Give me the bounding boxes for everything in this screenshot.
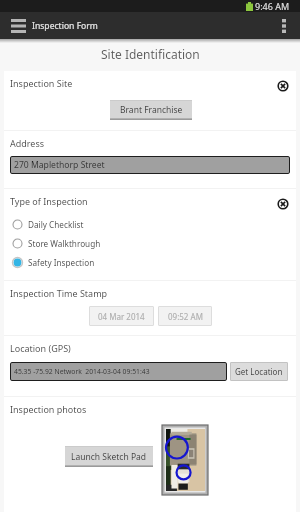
button[interactable]: 04 Mar 2014 (89, 306, 154, 326)
staticText: Get Location (235, 366, 283, 377)
staticText: 270 Maplethorp Street (14, 159, 105, 171)
staticText: Daily Checklist (28, 219, 84, 230)
button[interactable]: 09:52 AM (158, 306, 212, 326)
staticText: Inspection Form (32, 20, 98, 32)
button[interactable]: Daily Checklist (4, 215, 296, 234)
staticText: 45.35 -75.92 Network 2014-03-04 09:51:43 (14, 367, 150, 376)
button[interactable]: Brant Franchise (110, 100, 192, 120)
staticText: Location (GPS) (10, 342, 71, 354)
button[interactable]: 270 Maplethorp Street (10, 156, 290, 174)
button[interactable]: Inspection photo (162, 425, 208, 495)
button[interactable]: Safety Inspection (4, 253, 296, 272)
button[interactable]: Launch Sketch Pad (65, 446, 153, 467)
staticText: Brant Franchise (120, 104, 183, 116)
button[interactable]: More options (274, 12, 300, 39)
staticText: 9:46 AM (255, 0, 290, 12)
button[interactable]: Menu (0, 12, 32, 39)
staticText: 04 Mar 2014 (98, 311, 145, 322)
staticText: Inspection Site (10, 77, 73, 89)
staticText: Safety Inspection (28, 257, 95, 268)
staticText: Store Walkthrough (28, 238, 101, 249)
button[interactable]: Clear (274, 195, 292, 213)
button[interactable]: Get Location (230, 362, 288, 381)
staticText: Inspection photos (10, 403, 87, 415)
staticText: Type of Inspection (10, 195, 88, 207)
staticText: Inspection Time Stamp (10, 287, 108, 299)
staticText: Site Identification (101, 46, 200, 62)
staticText: Address (10, 137, 45, 149)
staticText: Launch Sketch Pad (71, 451, 147, 463)
button[interactable]: Store Walkthrough (4, 234, 296, 253)
button[interactable]: Clear (274, 77, 292, 95)
staticText: 09:52 AM (168, 311, 203, 322)
button[interactable]: 45.35 -75.92 Network 2014-03-04 09:51:43 (10, 362, 227, 381)
